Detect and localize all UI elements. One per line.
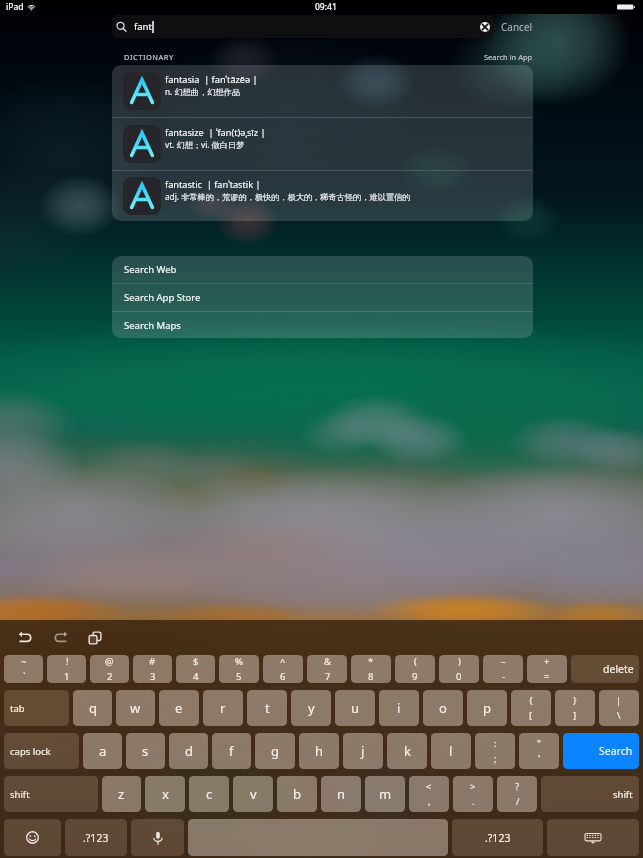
button[interactable]: – xyxy=(483,655,523,683)
button[interactable] xyxy=(131,819,184,856)
button[interactable]: s xyxy=(126,733,165,769)
button[interactable]: > xyxy=(453,776,493,812)
button[interactable]: p xyxy=(467,690,507,726)
button[interactable]: g xyxy=(255,733,295,769)
button[interactable]: t xyxy=(247,690,287,726)
button[interactable]: * xyxy=(351,655,391,683)
button[interactable]: .?123 xyxy=(452,819,543,856)
button[interactable]: Cancel xyxy=(497,15,537,38)
staticText: fantasize | ˈfan(t)əˌsīz | xyxy=(165,126,266,139)
staticText: shift xyxy=(10,788,30,801)
button[interactable]: { xyxy=(511,690,551,726)
button[interactable]: | xyxy=(599,690,639,726)
button[interactable]: ^ xyxy=(263,655,303,683)
button[interactable]: w xyxy=(116,690,155,726)
button[interactable]: v xyxy=(233,776,273,812)
button[interactable]: f xyxy=(212,733,251,769)
button[interactable]: l xyxy=(431,733,471,769)
button[interactable]: shift xyxy=(4,776,98,812)
button[interactable]: ) xyxy=(439,655,479,683)
staticText: j xyxy=(361,742,365,760)
button[interactable]: : xyxy=(475,733,515,769)
button[interactable]: n xyxy=(321,776,361,812)
staticText: 6 xyxy=(280,670,286,683)
button[interactable]: @ xyxy=(90,655,129,683)
staticText: { xyxy=(529,694,533,707)
staticText: m xyxy=(379,785,392,803)
button[interactable]: e xyxy=(159,690,199,726)
button[interactable]: " xyxy=(519,733,559,769)
button[interactable]: Search App Store xyxy=(112,284,533,311)
staticText: # xyxy=(149,655,156,668)
button[interactable]: b xyxy=(277,776,317,812)
staticText: 4 xyxy=(193,670,199,683)
button[interactable]: k xyxy=(387,733,427,769)
button[interactable]: r xyxy=(203,690,243,726)
staticText: ; xyxy=(494,752,497,765)
button[interactable]: h xyxy=(299,733,339,769)
staticText: | xyxy=(616,694,622,707)
button[interactable]: Undo xyxy=(18,630,33,645)
button[interactable]: u xyxy=(335,690,375,726)
button[interactable] xyxy=(188,819,448,856)
button[interactable]: i xyxy=(379,690,419,726)
button[interactable]: caps lock xyxy=(4,733,79,769)
button[interactable]: x xyxy=(145,776,185,812)
button[interactable]: & xyxy=(307,655,347,683)
staticText: y xyxy=(308,699,315,717)
staticText: 2 xyxy=(107,670,113,683)
button[interactable]: fantasize | ˈfan(t)əˌsīz | xyxy=(112,118,533,170)
button[interactable]: q xyxy=(73,690,112,726)
button[interactable]: ( xyxy=(395,655,435,683)
button[interactable]: % xyxy=(219,655,259,683)
button[interactable]: z xyxy=(102,776,141,812)
button[interactable]: ? xyxy=(497,776,537,812)
staticText: fantastic | fanˈtastik | xyxy=(165,178,261,191)
button[interactable]: ! xyxy=(47,655,86,683)
staticText: u xyxy=(351,699,360,717)
button[interactable]: o xyxy=(423,690,463,726)
staticText: 0 xyxy=(456,670,462,683)
button[interactable]: Paste xyxy=(88,631,102,645)
button[interactable]: Search xyxy=(563,733,639,769)
staticText: p xyxy=(483,699,491,717)
staticText: .?123 xyxy=(485,831,511,845)
staticText: $ xyxy=(193,655,199,668)
button[interactable]: ~ xyxy=(4,655,43,683)
button[interactable]: d xyxy=(169,733,208,769)
button[interactable]: fantastic | fanˈtastik | xyxy=(112,171,533,221)
staticText: f xyxy=(229,742,234,760)
button[interactable]: + xyxy=(527,655,567,683)
staticText: - xyxy=(502,670,506,683)
button[interactable]: delete xyxy=(571,655,639,683)
staticText: 09:41 xyxy=(315,1,337,13)
button[interactable]: Search Maps xyxy=(112,312,533,338)
button[interactable]: Clear search text xyxy=(480,22,490,32)
button[interactable]: .?123 xyxy=(65,819,127,856)
button[interactable] xyxy=(547,819,639,856)
button[interactable]: c xyxy=(189,776,229,812)
staticText: i xyxy=(397,699,401,717)
button[interactable]: $ xyxy=(176,655,215,683)
button[interactable]: Search Web xyxy=(112,256,533,283)
button[interactable]: < xyxy=(409,776,449,812)
button[interactable]: j xyxy=(343,733,383,769)
staticText: . xyxy=(472,795,475,808)
button[interactable]: Search in App xyxy=(484,52,533,62)
button[interactable]: fantasia | fanˈtāzēə | xyxy=(112,65,533,117)
button[interactable]: y xyxy=(291,690,331,726)
staticText: % xyxy=(235,655,243,668)
staticText: vt. 幻想；vi. 做白日梦 xyxy=(165,139,245,150)
button[interactable]: a xyxy=(83,733,122,769)
button[interactable] xyxy=(4,819,61,856)
staticText: Search in App xyxy=(484,52,533,62)
staticText: shift xyxy=(613,788,633,801)
button[interactable]: fant xyxy=(112,15,494,38)
button[interactable]: tab xyxy=(4,690,69,726)
button[interactable]: # xyxy=(133,655,172,683)
button[interactable]: } xyxy=(555,690,595,726)
button[interactable]: m xyxy=(365,776,405,812)
staticText: .?123 xyxy=(83,831,109,845)
button[interactable]: shift xyxy=(541,776,639,812)
button[interactable]: Redo xyxy=(53,630,68,645)
